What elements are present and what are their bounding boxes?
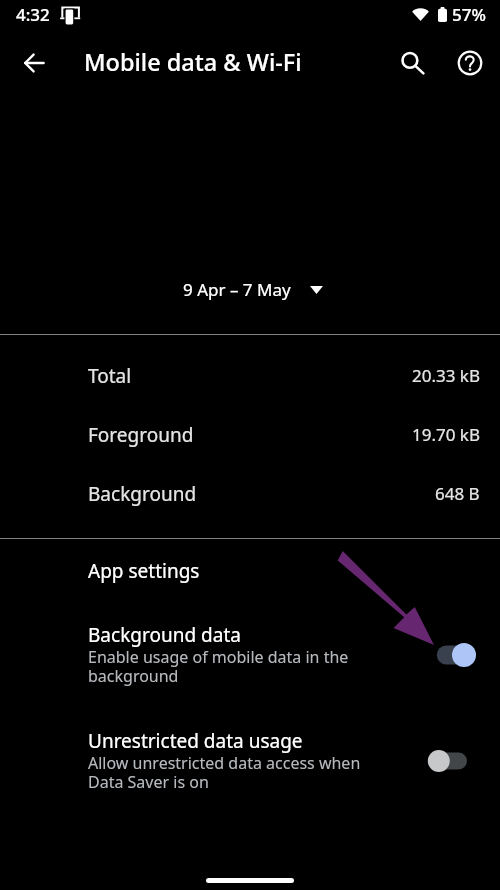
button[interactable]: Background data enabled (436, 641, 476, 669)
staticText: Background data (88, 622, 241, 648)
button[interactable]: Search (390, 41, 434, 85)
staticText: 20.33 kB (412, 364, 480, 387)
button[interactable]: Help (448, 41, 492, 85)
staticText: 9 Apr – 7 May (183, 278, 291, 301)
staticText: 19.70 kB (412, 423, 480, 446)
staticText: 57% (452, 3, 486, 26)
button[interactable]: Unrestricted data usage disabled (427, 747, 467, 775)
staticText: Background (88, 481, 197, 507)
button[interactable]: Unrestricted data usage (0, 716, 500, 807)
staticText: Mobile data & Wi-Fi (84, 46, 302, 78)
staticText: 4:32 (16, 3, 50, 26)
button[interactable]: Foreground (0, 405, 500, 464)
button[interactable]: App settings (0, 545, 500, 597)
staticText: 648 B (435, 482, 480, 505)
staticText: App settings (88, 558, 200, 584)
staticText: Foreground (88, 422, 194, 448)
staticText: Enable usage of mobile data in the backg… (88, 646, 349, 687)
staticText: Allow unrestricted data access when Data… (88, 752, 361, 793)
button[interactable]: Background (0, 464, 500, 523)
staticText: Unrestricted data usage (88, 728, 303, 754)
staticText: Total (88, 363, 132, 389)
button[interactable]: Back (13, 42, 55, 84)
button[interactable]: Background data (0, 610, 500, 701)
button[interactable]: 9 Apr – 7 May (183, 278, 323, 301)
button[interactable]: Total (0, 346, 500, 405)
